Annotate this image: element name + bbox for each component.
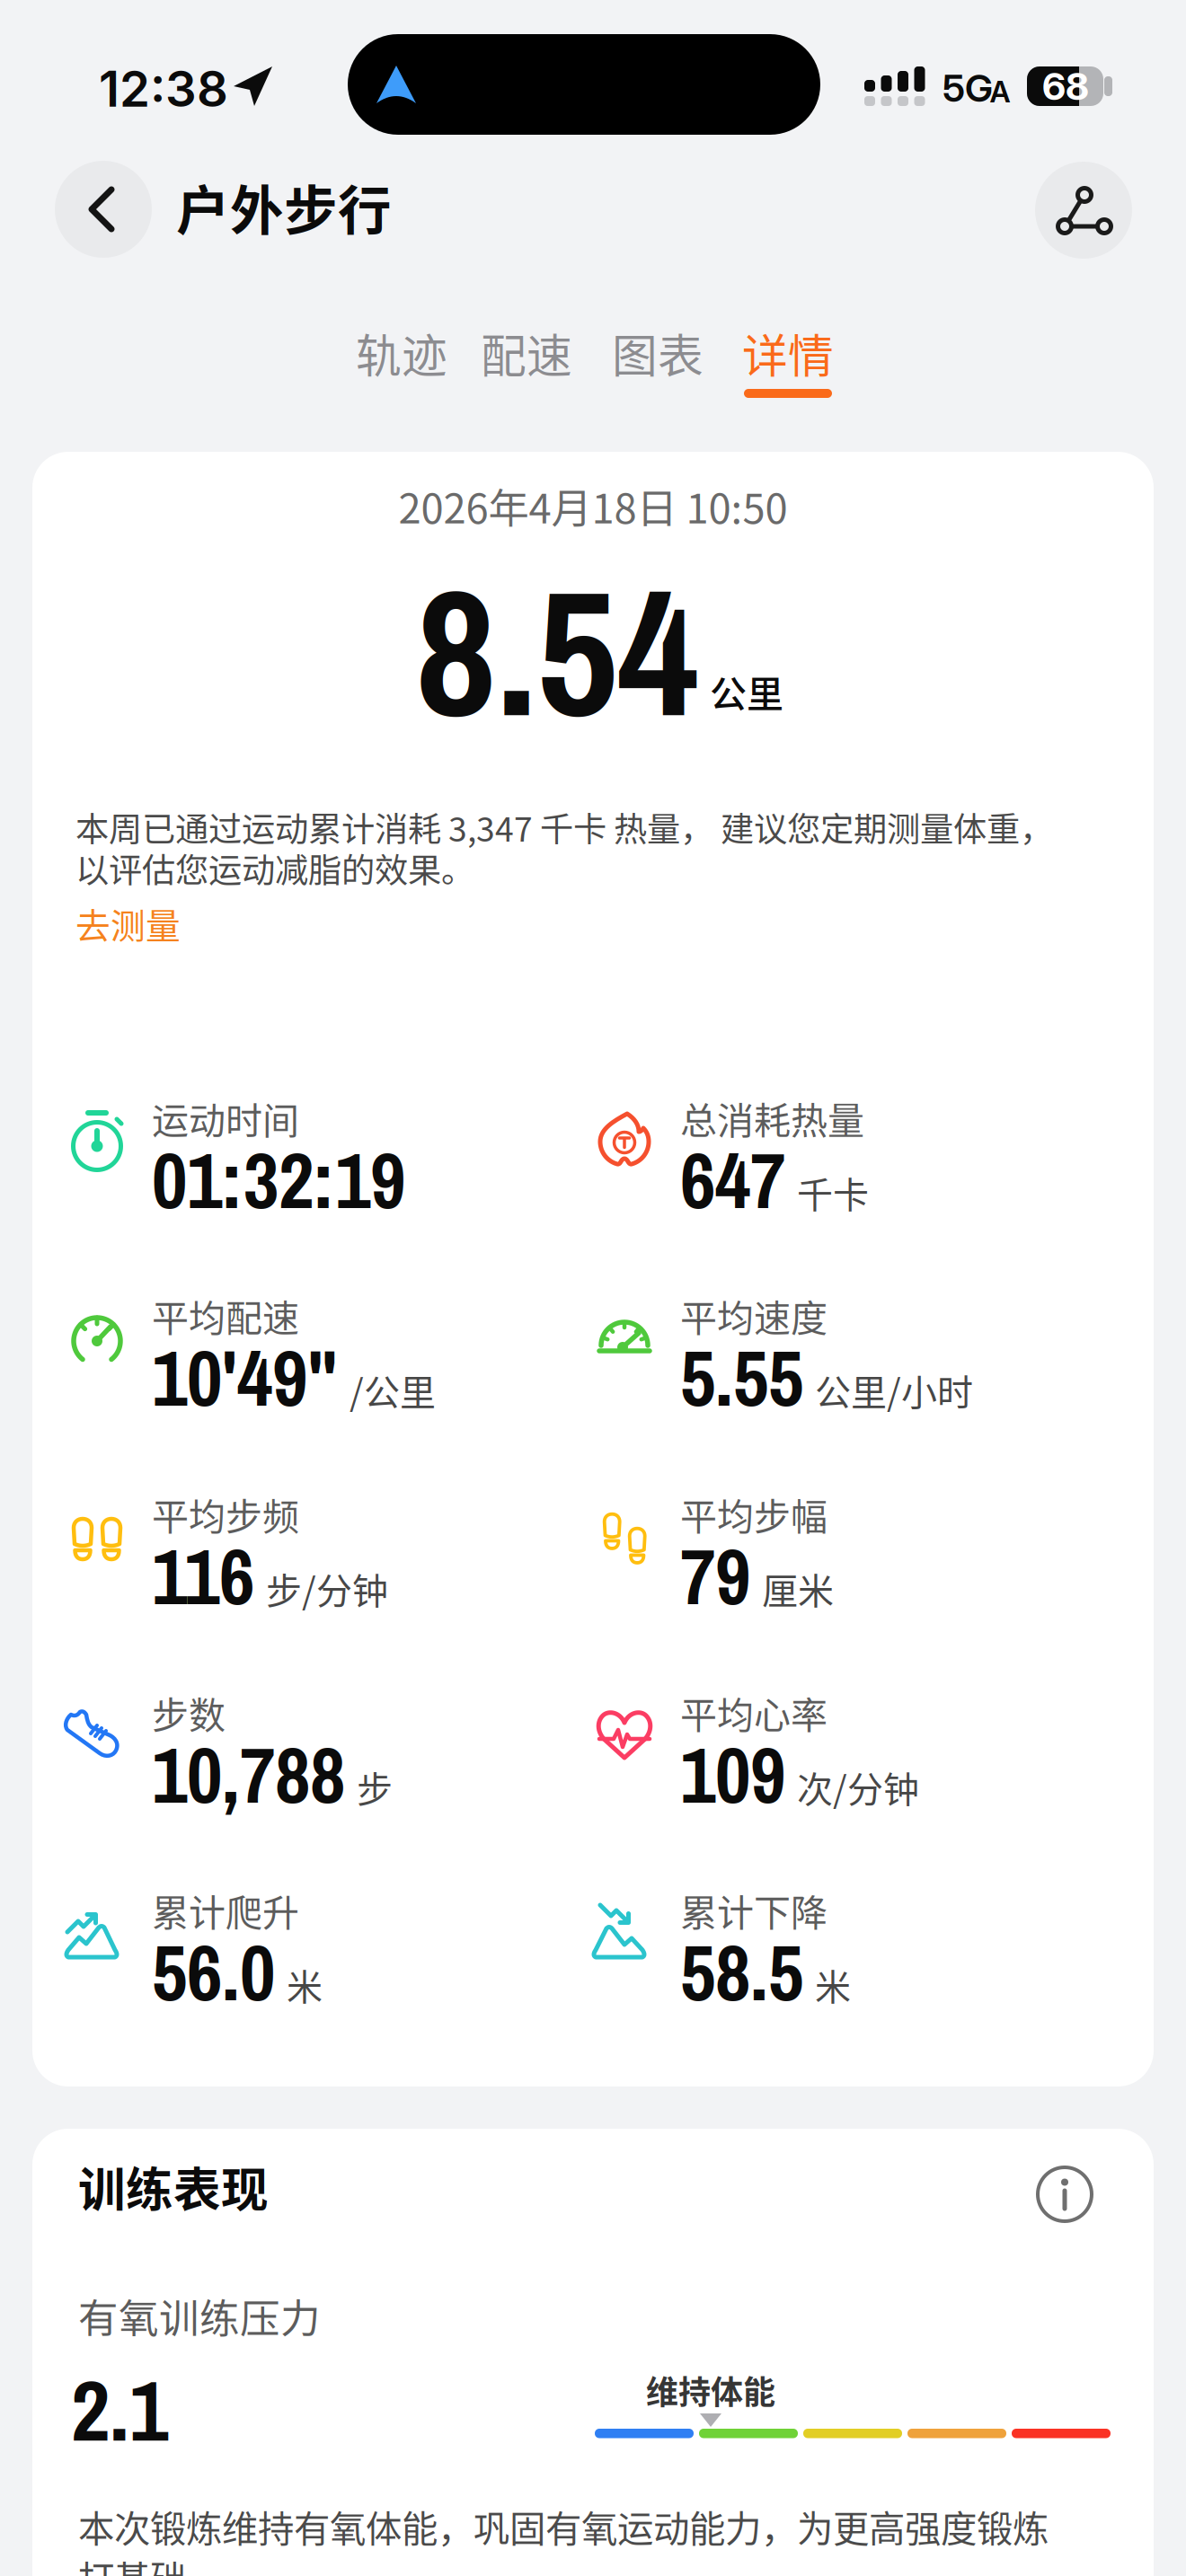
staticText: 109 xyxy=(680,1722,785,1827)
button[interactable]: 轨迹 xyxy=(356,320,447,386)
staticText: 12:38 xyxy=(99,59,228,118)
staticText: 详情 xyxy=(742,320,834,386)
staticText: 有氧训练压力 xyxy=(78,2287,321,2345)
staticText: 公里/小时 xyxy=(815,1364,973,1416)
staticText: 本次锻炼维持有氧体能，巩固有氧运动能力，为更高强度锻炼 打基础 xyxy=(78,2501,1049,2576)
staticText: 8.54 xyxy=(416,532,699,770)
staticText: 总消耗热量 xyxy=(680,1091,864,1145)
button[interactable]: 详情 xyxy=(742,320,834,386)
staticText: 运动时间 xyxy=(152,1091,299,1145)
staticText: 平均速度 xyxy=(680,1289,828,1342)
staticText: 步数 xyxy=(152,1686,226,1739)
staticText: 平均步幅 xyxy=(680,1487,828,1541)
staticText: 5G xyxy=(943,65,993,111)
button[interactable]: 返回 xyxy=(55,161,152,258)
staticText: 116 xyxy=(152,1524,254,1628)
staticText: 米 xyxy=(287,1958,323,2011)
staticText: 平均心率 xyxy=(680,1686,828,1739)
staticText: 千卡 xyxy=(797,1166,869,1218)
staticText: 次/分钟 xyxy=(797,1761,919,1813)
staticText: 10,788 xyxy=(152,1722,345,1827)
staticText: 公里 xyxy=(710,665,783,718)
staticText: 累计下降 xyxy=(680,1884,828,1937)
staticText: 2026年4月18日 10:50 xyxy=(398,476,788,535)
staticText: 累计爬升 xyxy=(152,1884,299,1937)
staticText: 2.1 xyxy=(71,2352,168,2467)
staticText: 58.5 xyxy=(680,1920,803,2024)
staticText: 配速 xyxy=(481,320,572,386)
staticText: /公里 xyxy=(350,1364,436,1416)
staticText: 5.55 xyxy=(680,1325,803,1430)
staticText: 01:32:19 xyxy=(152,1128,405,1232)
staticText: 68 xyxy=(1042,63,1089,109)
staticText: A xyxy=(990,74,1010,109)
staticText: 轨迹 xyxy=(356,320,447,386)
staticText: 平均步频 xyxy=(152,1487,299,1541)
staticText: 户外步行 xyxy=(176,168,392,245)
button[interactable]: 配速 xyxy=(481,320,572,386)
staticText: 图表 xyxy=(612,320,704,386)
staticText: 米 xyxy=(815,1958,851,2011)
staticText: 步 xyxy=(357,1761,393,1813)
staticText: 56.0 xyxy=(152,1920,275,2024)
staticText: 647 xyxy=(680,1128,785,1232)
staticText: 训练表现 xyxy=(78,2152,269,2220)
staticText: 步/分钟 xyxy=(266,1562,388,1614)
staticText: 平均配速 xyxy=(152,1289,299,1342)
staticText: 本周已通过运动累计消耗 3,347 千卡 热量， 建议您定期测量体重， 以评估您… xyxy=(75,807,1053,889)
button[interactable]: 图表 xyxy=(612,320,704,386)
staticText: 79 xyxy=(680,1524,750,1628)
staticText: 维持体能 xyxy=(646,2367,775,2413)
button[interactable]: 训练表现说明 xyxy=(1032,2162,1097,2227)
staticText: 去测量 xyxy=(75,898,181,948)
staticText: 厘米 xyxy=(762,1562,834,1614)
button[interactable]: 去测量 xyxy=(75,898,181,948)
button[interactable]: 分享 xyxy=(1035,162,1132,259)
staticText: 10'49" xyxy=(152,1325,338,1430)
